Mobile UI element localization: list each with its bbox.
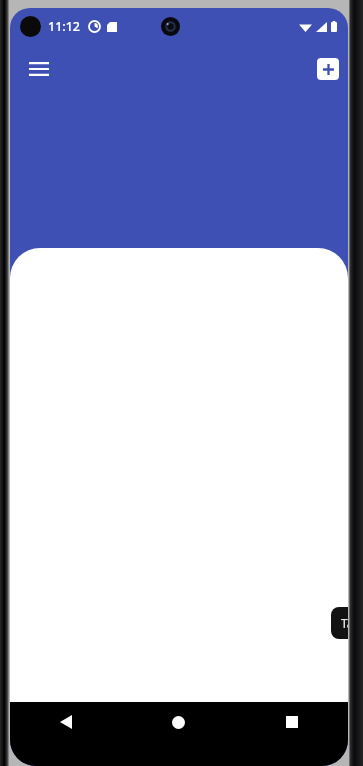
button[interactable]: Take photo xyxy=(331,607,348,639)
button[interactable]: Open navigation menu xyxy=(19,49,59,89)
button[interactable]: Home xyxy=(122,702,235,742)
staticText: 11:12 xyxy=(48,18,81,35)
button[interactable]: Recent apps xyxy=(235,702,348,742)
staticText: Take photo xyxy=(341,615,348,631)
button[interactable]: Add xyxy=(317,58,339,80)
button[interactable]: Back xyxy=(10,702,122,742)
